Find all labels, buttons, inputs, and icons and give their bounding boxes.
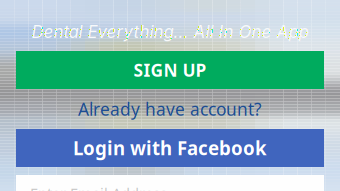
staticText: SIGN UP bbox=[133, 58, 206, 81]
staticText: Already have account? bbox=[78, 97, 262, 120]
button[interactable]: Already have account? bbox=[16, 89, 324, 129]
staticText: Enter Email Address bbox=[30, 183, 167, 191]
button[interactable]: Login with Facebook bbox=[16, 129, 324, 167]
staticText: Dental Everything... All In One App bbox=[31, 22, 308, 42]
staticText: Login with Facebook bbox=[73, 136, 267, 160]
button[interactable]: SIGN UP bbox=[16, 51, 324, 89]
